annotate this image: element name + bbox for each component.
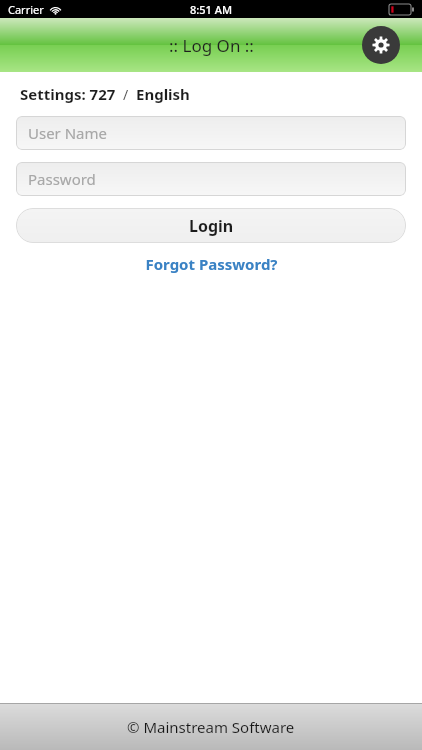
staticText: © Mainstream Software: [127, 717, 295, 737]
button[interactable]: Password: [16, 162, 406, 196]
staticText: Forgot Password?: [145, 254, 278, 274]
staticText: Carrier: [8, 2, 44, 17]
staticText: 8:51 AM: [190, 2, 233, 17]
button[interactable]: Forgot Password?: [135, 251, 288, 277]
button[interactable]: Settings: 727: [20, 84, 422, 104]
staticText: Login: [189, 215, 234, 237]
staticText: /: [123, 85, 129, 104]
button[interactable]: Settings: [362, 26, 400, 64]
staticText: Password: [28, 169, 96, 189]
button[interactable]: Login: [16, 208, 406, 243]
staticText: User Name: [28, 123, 108, 143]
staticText: Settings: 727: [20, 84, 116, 104]
staticText: English: [136, 84, 190, 104]
staticText: :: Log On ::: [169, 34, 254, 57]
button[interactable]: User Name: [16, 116, 406, 150]
